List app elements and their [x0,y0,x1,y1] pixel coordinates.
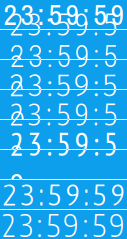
staticText: 23:59:59 [2,205,124,239]
staticText: 23:59:59 [9,39,117,110]
staticText: 23:59:59 [9,123,117,206]
staticText: 23:59:59 [2,177,124,212]
staticText: 23:59:59 [9,68,117,141]
staticText: 23:59:59 [3,0,123,34]
staticText: 23:59:59 [9,3,117,86]
staticText: 23:59:59 [9,93,117,176]
